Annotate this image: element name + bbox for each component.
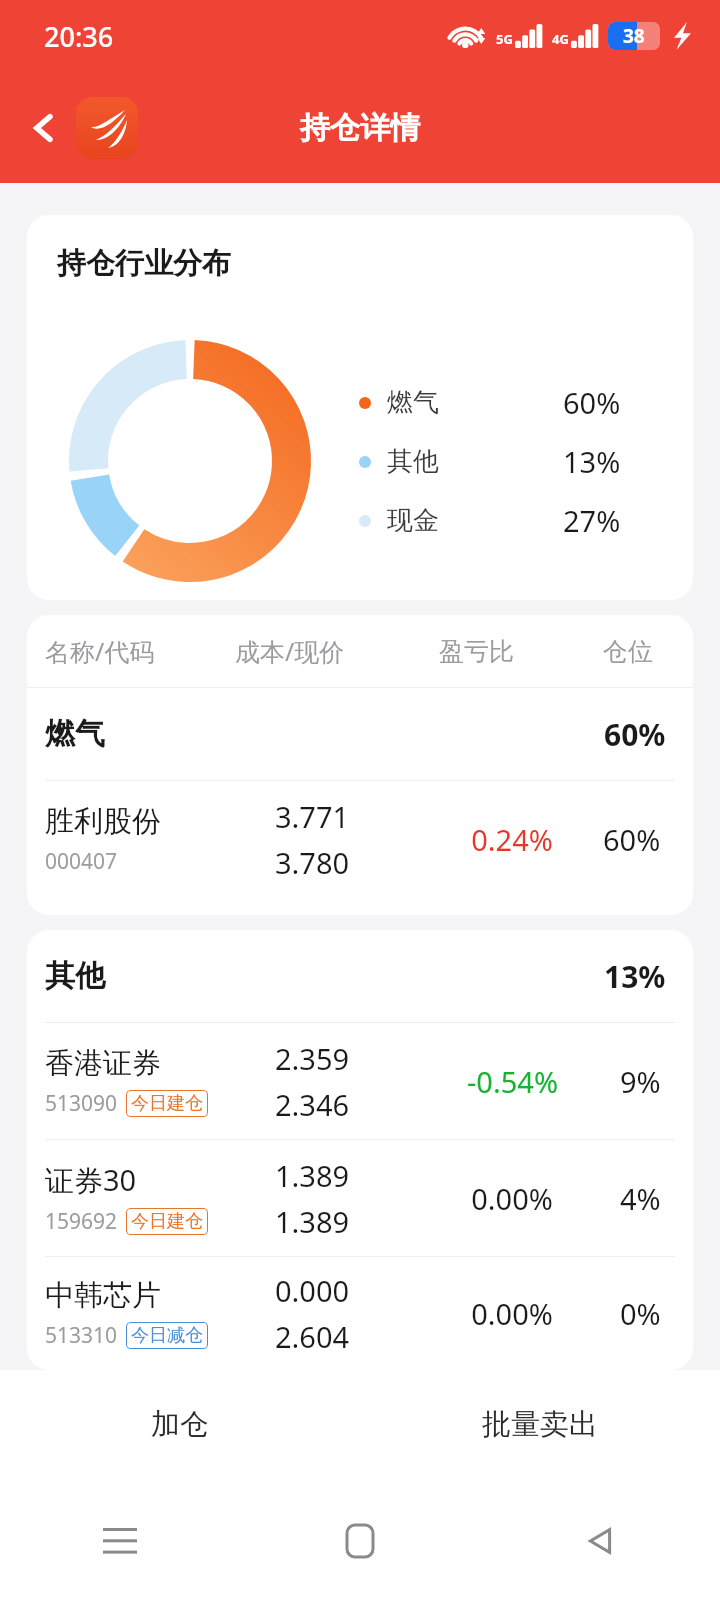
- button[interactable]: Back: [18, 102, 70, 154]
- button[interactable]: 持仓行业分布: [27, 215, 693, 600]
- staticText: 香港证券: [45, 1045, 161, 1082]
- staticText: 名称/代码: [45, 634, 155, 668]
- staticText: 60%: [603, 820, 661, 859]
- staticText: 60%: [563, 383, 621, 422]
- staticText: 513090: [45, 1089, 118, 1118]
- staticText: 中韩芯片: [45, 1277, 161, 1314]
- staticText: 0.24%: [471, 820, 553, 859]
- staticText: 持仓详情: [300, 109, 420, 147]
- staticText: 今日减仓: [131, 1324, 203, 1347]
- staticText: 513310: [45, 1321, 118, 1350]
- staticText: 000407: [45, 847, 118, 876]
- button[interactable]: 燃气: [27, 688, 693, 780]
- staticText: 批量卖出: [482, 1406, 598, 1443]
- staticText: 1.389: [275, 1202, 350, 1241]
- staticText: 今日建仓: [131, 1210, 203, 1233]
- button[interactable]: 其他: [27, 930, 693, 1022]
- staticText: 5G: [496, 30, 513, 48]
- staticText: 其他: [45, 957, 105, 995]
- button[interactable]: 胜利股份: [27, 781, 693, 897]
- staticText: 0.00%: [471, 1179, 553, 1218]
- staticText: 2.359: [275, 1039, 350, 1078]
- button[interactable]: App logo: [76, 97, 138, 159]
- button[interactable]: 香港证券: [27, 1023, 693, 1139]
- staticText: 20:36: [44, 18, 114, 55]
- staticText: 3.780: [275, 843, 350, 882]
- button[interactable]: 批量卖出: [360, 1370, 720, 1478]
- staticText: 2.346: [275, 1085, 350, 1124]
- staticText: 胜利股份: [45, 803, 161, 840]
- button[interactable]: Recents: [0, 1478, 240, 1604]
- staticText: 0.00%: [471, 1294, 553, 1333]
- button[interactable]: 证券30: [27, 1140, 693, 1256]
- staticText: 4G: [552, 30, 569, 48]
- staticText: 2.604: [275, 1317, 350, 1356]
- staticText: 13%: [563, 442, 621, 481]
- staticText: 13%: [604, 956, 666, 997]
- staticText: 燃气: [387, 386, 439, 419]
- staticText: 现金: [387, 504, 439, 537]
- staticText: 0%: [620, 1294, 661, 1333]
- staticText: 成本/现价: [235, 634, 345, 668]
- button[interactable]: Home: [240, 1478, 480, 1604]
- staticText: -0.54%: [467, 1062, 558, 1101]
- button[interactable]: 加仓: [0, 1370, 360, 1478]
- staticText: 0.000: [275, 1271, 350, 1310]
- staticText: 27%: [563, 501, 621, 540]
- staticText: 4%: [620, 1179, 661, 1218]
- staticText: 60%: [604, 714, 666, 755]
- button[interactable]: 中韩芯片: [27, 1257, 693, 1370]
- staticText: 证券30: [45, 1160, 137, 1200]
- staticText: 38: [623, 23, 645, 49]
- staticText: 9%: [620, 1062, 661, 1101]
- staticText: 仓位: [603, 636, 653, 667]
- staticText: 1.389: [275, 1156, 350, 1195]
- staticText: 持仓行业分布: [57, 245, 231, 282]
- staticText: 今日建仓: [131, 1092, 203, 1115]
- staticText: 盈亏比: [439, 636, 514, 667]
- staticText: 159692: [45, 1207, 118, 1236]
- staticText: 燃气: [45, 715, 105, 753]
- button[interactable]: Back: [480, 1478, 720, 1604]
- staticText: 加仓: [151, 1406, 209, 1443]
- staticText: 其他: [387, 445, 439, 478]
- staticText: 3.771: [275, 797, 350, 836]
